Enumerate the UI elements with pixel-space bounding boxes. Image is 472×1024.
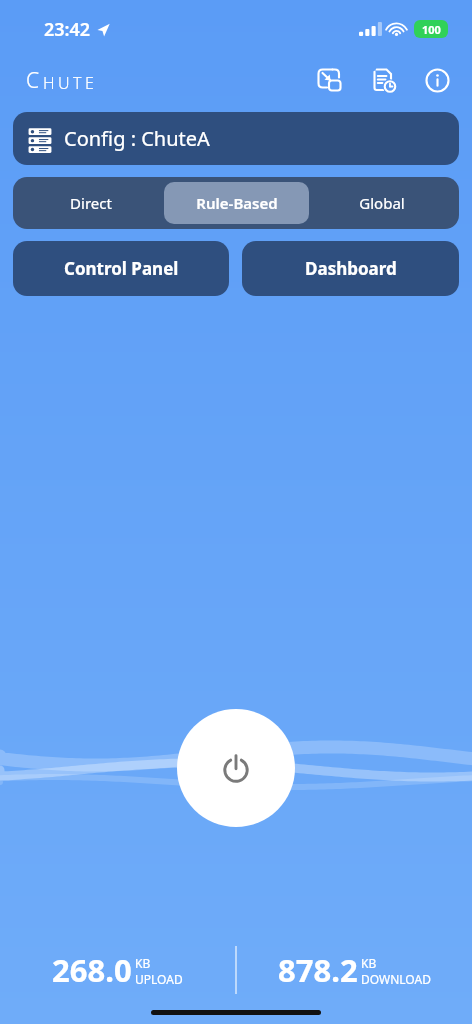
staticText: Control Panel — [64, 257, 179, 280]
button[interactable]: Direct — [18, 182, 164, 224]
button[interactable]: Power toggle — [177, 709, 295, 827]
staticText: DOWNLOAD — [361, 971, 431, 987]
button[interactable]: Global — [309, 182, 454, 224]
staticText: Config : ChuteA — [64, 125, 210, 152]
button[interactable]: Logs — [366, 63, 400, 97]
staticText: Dashboard — [305, 257, 397, 280]
staticText: KB — [135, 955, 151, 971]
staticText: Rule-Based — [196, 193, 278, 213]
staticText: KB — [361, 955, 377, 971]
button[interactable]: Dashboard — [242, 241, 459, 296]
button[interactable]: Picture in picture — [312, 63, 346, 97]
button[interactable]: Control Panel — [13, 241, 229, 296]
staticText: 100 — [422, 22, 441, 37]
button[interactable]: Config : ChuteA — [13, 112, 459, 165]
staticText: C — [26, 66, 43, 95]
staticText: HUTE — [43, 72, 98, 94]
staticText: 878.2 — [278, 949, 358, 991]
staticText: Direct — [70, 193, 112, 213]
staticText: Global — [359, 193, 405, 213]
button[interactable]: Rule-Based — [164, 182, 309, 224]
staticText: UPLOAD — [135, 971, 183, 987]
staticText: 268.0 — [52, 949, 132, 991]
button[interactable]: Information — [420, 63, 454, 97]
staticText: 23:42 — [44, 17, 91, 42]
